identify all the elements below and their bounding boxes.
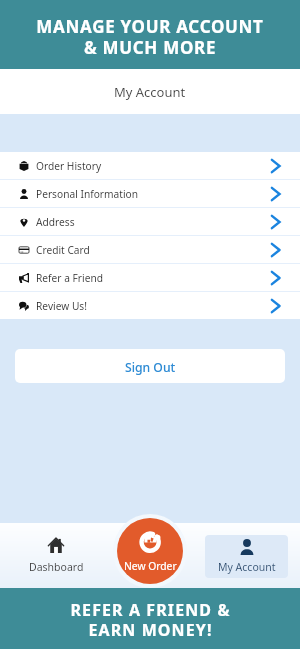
staticText: Address [36, 215, 75, 229]
staticText: Sign Out [125, 359, 176, 376]
staticText: MANAGE YOUR ACCOUNT & MUCH MORE [36, 15, 264, 59]
button[interactable]: Dashboard [11, 523, 101, 588]
button[interactable]: Sign Out [15, 349, 285, 383]
button[interactable]: Refer a Friend [0, 264, 300, 291]
button[interactable]: Personal Information [0, 180, 300, 207]
staticText: Credit Card [36, 243, 90, 257]
staticText: REFER A FRIEND & EARN MONEY! [70, 599, 231, 640]
staticText: New Order [124, 559, 177, 573]
staticText: Review Us! [36, 299, 87, 313]
staticText: My Account [218, 560, 276, 574]
staticText: Dashboard [29, 560, 84, 574]
staticText: Refer a Friend [36, 271, 103, 285]
button[interactable]: Address [0, 208, 300, 235]
button[interactable]: Order History [0, 152, 300, 179]
button[interactable]: Review Us! [0, 292, 300, 319]
button[interactable]: New Order [117, 518, 183, 584]
staticText: My Account [114, 83, 186, 101]
staticText: Order History [36, 159, 102, 173]
button[interactable]: My Account [205, 535, 288, 578]
staticText: Personal Information [36, 187, 139, 201]
button[interactable]: Credit Card [0, 236, 300, 263]
